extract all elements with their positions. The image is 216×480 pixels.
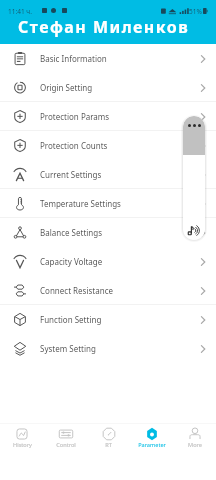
staticText: System Setting bbox=[40, 343, 96, 354]
staticText: Protection Params bbox=[40, 111, 110, 122]
staticText: Origin Setting bbox=[40, 82, 93, 93]
staticText: Balance Settings bbox=[40, 227, 103, 238]
staticText: Connect Resistance bbox=[40, 285, 113, 296]
staticText: 11:41 ч. bbox=[8, 7, 32, 16]
staticText: More bbox=[188, 441, 202, 449]
staticText: Capacity Voltage bbox=[40, 256, 103, 267]
button[interactable]: Floating assistant panel bbox=[183, 116, 205, 240]
button[interactable]: Temperature Settings bbox=[0, 189, 216, 218]
staticText: Стефан Миленков bbox=[18, 16, 190, 38]
button[interactable]: History bbox=[0, 424, 44, 456]
button[interactable]: Control bbox=[44, 424, 87, 456]
staticText: Current Settings bbox=[40, 169, 102, 180]
staticText: Protection Counts bbox=[40, 140, 108, 151]
button[interactable]: System Setting bbox=[0, 334, 216, 363]
button[interactable]: Parameter bbox=[130, 424, 173, 456]
button[interactable]: Connect Resistance bbox=[0, 276, 216, 305]
button[interactable]: RT bbox=[87, 424, 130, 456]
button[interactable]: Current Settings bbox=[0, 160, 216, 189]
button[interactable]: Capacity Voltage bbox=[0, 247, 216, 276]
button[interactable]: Function Setting bbox=[0, 305, 216, 334]
staticText: RT bbox=[105, 441, 112, 449]
button[interactable]: Basic Information bbox=[0, 44, 216, 73]
staticText: 51% bbox=[189, 7, 202, 16]
button[interactable]: Protection Counts bbox=[0, 131, 216, 160]
staticText: Control bbox=[56, 441, 76, 449]
staticText: History bbox=[13, 441, 32, 449]
button[interactable]: Protection Params bbox=[0, 102, 216, 131]
staticText: Basic Information bbox=[40, 53, 107, 64]
staticText: Temperature Settings bbox=[40, 198, 121, 209]
button[interactable]: Origin Setting bbox=[0, 73, 216, 102]
staticText: Parameter bbox=[138, 441, 166, 449]
button[interactable]: Balance Settings bbox=[0, 218, 216, 247]
staticText: Function Setting bbox=[40, 314, 102, 325]
button[interactable]: More bbox=[173, 424, 216, 456]
